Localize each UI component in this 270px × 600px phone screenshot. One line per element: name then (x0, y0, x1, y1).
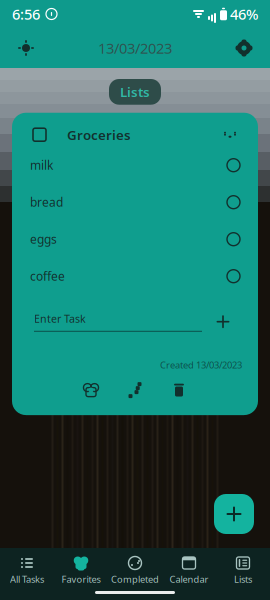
button[interactable]: eggs (12, 221, 258, 258)
staticText: coffee (30, 268, 65, 284)
button[interactable]: milk (12, 147, 258, 184)
staticText: Favorites (61, 573, 100, 585)
button[interactable]: Favorite (78, 377, 104, 403)
staticText: Enter Task (34, 312, 86, 326)
button[interactable]: Edit (122, 377, 148, 403)
staticText: Created 13/03/2023 (160, 359, 242, 371)
button[interactable]: Toggle theme (10, 32, 42, 64)
button[interactable]: Favorites (54, 554, 108, 587)
staticText: 13/03/2023 (98, 38, 172, 58)
button[interactable]: coffee (12, 258, 258, 295)
staticText: eggs (30, 231, 57, 247)
staticText: Lists (234, 573, 252, 585)
staticText: 46% (230, 4, 258, 24)
button[interactable]: Collapse list (218, 123, 242, 147)
staticText: Calendar (169, 573, 208, 585)
button[interactable]: Completed (108, 554, 162, 587)
button[interactable]: Lists (216, 554, 270, 587)
button[interactable]: Calendar (162, 554, 216, 587)
staticText: Completed (111, 573, 159, 585)
button[interactable]: bread (12, 184, 258, 221)
staticText: Lists (120, 83, 150, 101)
staticText: Groceries (67, 126, 131, 144)
staticText: bread (30, 194, 63, 210)
button[interactable]: Add task (210, 309, 236, 335)
button[interactable]: All Tasks (0, 554, 54, 587)
button[interactable]: New task (214, 494, 254, 534)
button[interactable]: Settings (228, 32, 260, 64)
staticText: All Tasks (10, 573, 44, 585)
staticText: 6:56 (12, 4, 40, 24)
button[interactable]: Delete (166, 377, 192, 403)
staticText: milk (30, 157, 53, 173)
button[interactable]: Select Groceries list (28, 123, 51, 146)
